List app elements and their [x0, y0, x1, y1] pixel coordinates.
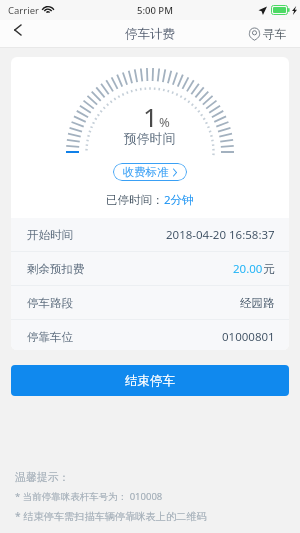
staticText: 预停时间 — [124, 131, 176, 147]
staticText: 经园路 — [240, 296, 275, 310]
staticText: % — [159, 113, 170, 131]
staticText: 1 — [143, 99, 158, 134]
button[interactable]: 开始时间 — [11, 218, 289, 251]
button[interactable]: Back — [0, 16, 34, 44]
button[interactable]: 寻车 — [243, 24, 300, 45]
staticText: 元 — [263, 262, 275, 276]
staticText: 20.00 — [233, 261, 263, 277]
staticText: 结束停车 — [125, 373, 175, 389]
staticText: 2018-04-20 16:58:37 — [166, 227, 275, 243]
staticText: Carrier — [8, 4, 39, 17]
button[interactable]: 收费标准 — [113, 163, 187, 181]
staticText: * 当前停靠咪表杆车号为： 010008 — [15, 490, 163, 503]
button[interactable]: 剩余预扣费 — [11, 252, 289, 285]
staticText: 寻车 — [263, 27, 287, 42]
staticText: 停车计费 — [125, 26, 175, 42]
button[interactable]: 停靠车位 — [11, 320, 289, 350]
staticText: 01000801 — [222, 329, 275, 345]
staticText: 5:00 PM — [137, 4, 173, 17]
staticText: 温馨提示： — [15, 471, 70, 485]
staticText: 开始时间 — [27, 228, 73, 242]
staticText: 停车路段 — [27, 296, 73, 310]
staticText: 收费标准 — [123, 165, 169, 179]
staticText: 停靠车位 — [27, 330, 73, 344]
staticText: * 结束停车需扫描车辆停靠咪表上的二维码 — [15, 509, 207, 523]
staticText: 2分钟 — [164, 192, 194, 208]
staticText: 剩余预扣费 — [27, 262, 85, 276]
button[interactable]: 结束停车 — [11, 365, 289, 396]
staticText: 已停时间： — [106, 193, 164, 207]
button[interactable]: 停车路段 — [11, 286, 289, 319]
